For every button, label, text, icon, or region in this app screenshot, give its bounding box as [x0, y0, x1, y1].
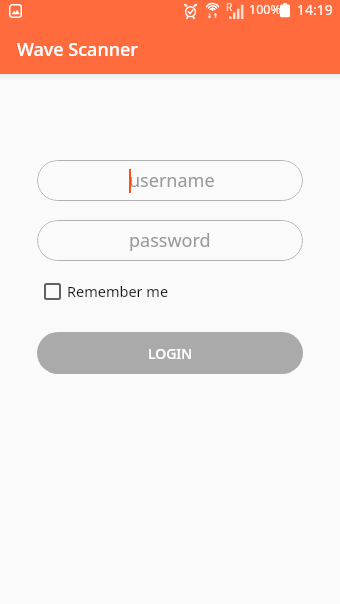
staticText: 14:19 [297, 0, 333, 19]
staticText: password [129, 228, 211, 253]
staticText: Wave Scanner [17, 37, 138, 62]
staticText: Remember me [67, 281, 169, 301]
staticText: LOGIN [148, 344, 193, 363]
button[interactable]: Username input field [37, 160, 303, 201]
button[interactable]: LOGIN [37, 332, 303, 374]
button[interactable]: Remember me [44, 281, 169, 301]
button[interactable]: Password input field [37, 220, 303, 261]
staticText: R [226, 0, 233, 14]
staticText: username [129, 168, 215, 193]
staticText: 100% [249, 1, 281, 18]
